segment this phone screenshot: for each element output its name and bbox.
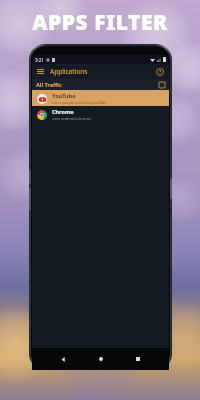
staticText: com.android.chrome <box>52 116 92 121</box>
staticText: Chrome <box>52 108 74 115</box>
staticText: YouTube <box>52 92 76 99</box>
button[interactable]: Open navigation drawer <box>32 64 169 79</box>
button[interactable]: Help <box>155 67 165 77</box>
button[interactable]: Home <box>95 353 107 365</box>
button[interactable]: All Traffic <box>32 79 169 90</box>
staticText: Applications <box>50 67 88 76</box>
staticText: com.google.android.youtube <box>52 100 107 105</box>
button[interactable]: Chrome <box>32 106 169 122</box>
staticText: APPS FILTER <box>32 8 168 37</box>
staticText: 3:21 <box>35 57 44 63</box>
button[interactable]: YouTube <box>32 90 169 106</box>
button[interactable]: Recent apps <box>132 353 144 365</box>
button[interactable]: Back <box>57 353 69 365</box>
button[interactable]: Open navigation drawer <box>36 67 45 76</box>
staticText: All Traffic <box>36 81 62 88</box>
